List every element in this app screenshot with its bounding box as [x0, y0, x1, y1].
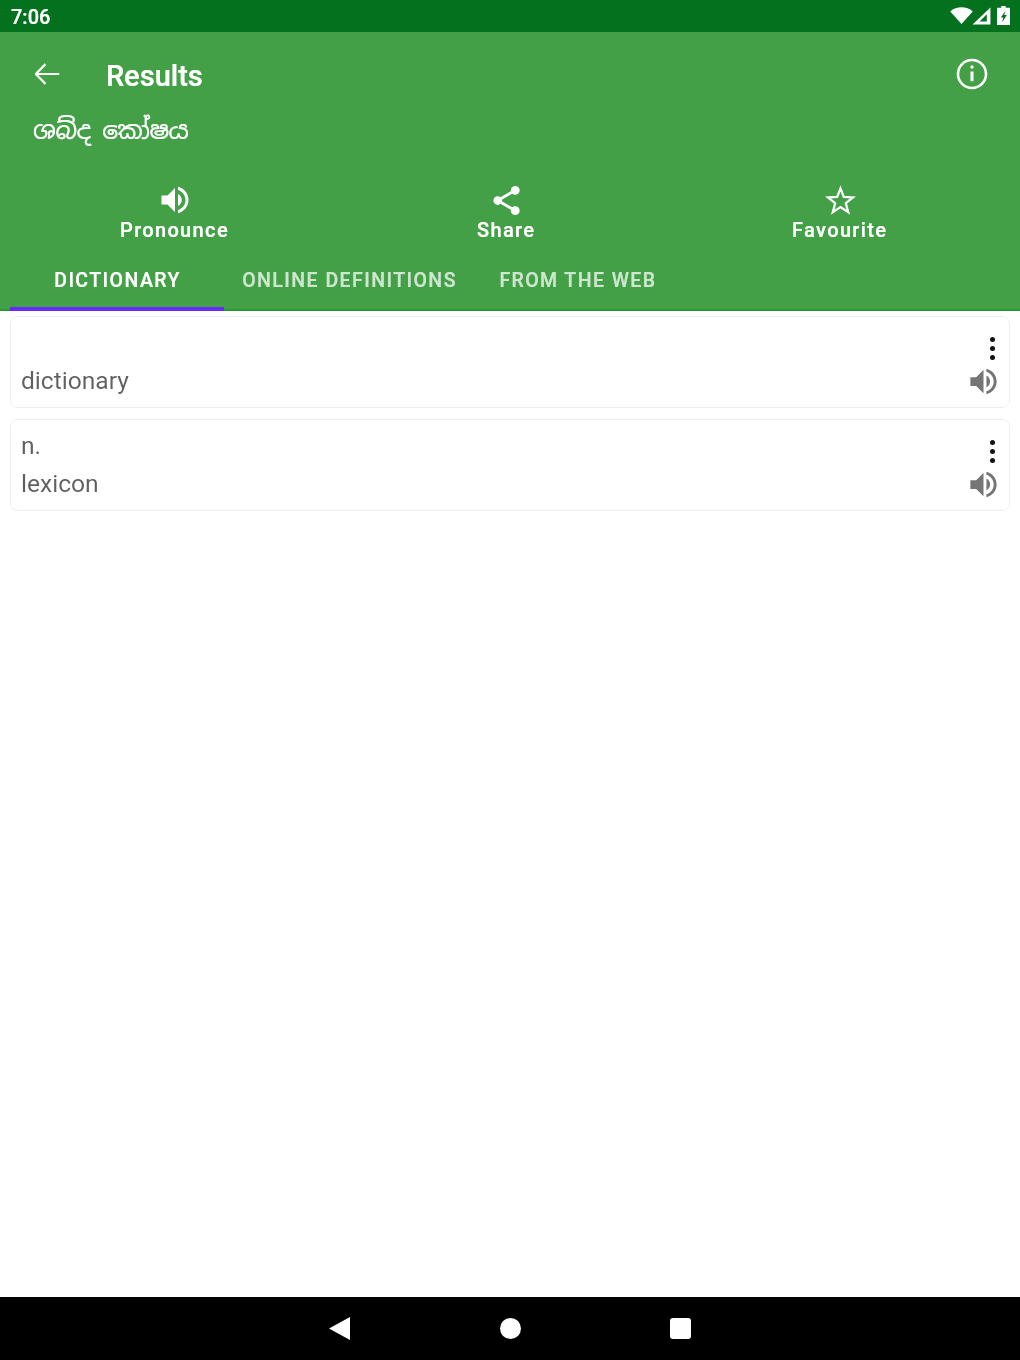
button[interactable]: Back [23, 50, 71, 98]
button[interactable]: ONLINE DEFINITIONS [224, 252, 474, 311]
staticText: Favourite [792, 218, 888, 241]
staticText: ශබ්ද කෝෂය [33, 114, 189, 147]
button[interactable]: Pronounce [961, 359, 1005, 403]
staticText: 7:06 [11, 5, 51, 28]
staticText: Share [477, 218, 536, 241]
button[interactable]: Back [299, 1297, 379, 1360]
staticText: dictionary [21, 366, 129, 395]
staticText: Results [106, 59, 203, 93]
button[interactable]: Recents [640, 1297, 720, 1360]
button[interactable]: DICTIONARY [10, 252, 224, 311]
staticText: ONLINE DEFINITIONS [242, 269, 457, 292]
button[interactable]: dictionary [10, 316, 1010, 408]
button[interactable]: FROM THE WEB [474, 252, 682, 311]
button[interactable]: n. [10, 419, 1010, 511]
button[interactable]: Pronounce [961, 462, 1005, 506]
staticText: n. [21, 431, 42, 460]
button[interactable]: Pronounce [79, 182, 269, 254]
button[interactable]: More options [970, 429, 1010, 473]
button[interactable]: More options [970, 326, 1010, 370]
staticText: Pronounce [120, 218, 229, 241]
staticText: DICTIONARY [54, 269, 181, 292]
staticText: lexicon [21, 469, 99, 498]
button[interactable]: Favourite [745, 182, 935, 254]
button[interactable]: Share [411, 182, 601, 254]
button[interactable]: Home [470, 1297, 550, 1360]
staticText: FROM THE WEB [499, 269, 657, 292]
button[interactable]: Info [948, 50, 996, 98]
